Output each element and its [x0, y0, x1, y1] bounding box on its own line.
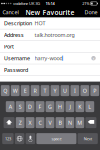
staticText: G: [48, 103, 52, 110]
staticText: V: [48, 119, 51, 126]
staticText: Q: [3, 87, 7, 94]
staticText: C: [39, 119, 42, 126]
staticText: Cancel: [2, 9, 18, 16]
staticText: O: [83, 87, 87, 94]
button[interactable]: L: [85, 101, 94, 112]
staticText: H: [58, 103, 62, 110]
staticText: Z: [19, 119, 22, 126]
staticText: New Favourite: [25, 8, 74, 17]
staticText: P: [93, 87, 96, 94]
staticText: Description: [4, 20, 32, 27]
button[interactable]: X: [26, 117, 34, 128]
button[interactable]: V: [46, 117, 54, 128]
staticText: Password: [4, 66, 28, 73]
button[interactable]: Z: [16, 117, 25, 128]
staticText: A: [9, 103, 12, 110]
staticText: 15:14: [45, 1, 54, 6]
staticText: talk.hotroom.org: [34, 31, 74, 38]
staticText: W: [13, 87, 18, 94]
button[interactable]: C: [36, 117, 44, 128]
staticText: K: [78, 103, 81, 110]
button[interactable]: Clear text: [90, 54, 97, 63]
button[interactable]: R: [31, 85, 39, 96]
button[interactable]: U: [60, 85, 69, 96]
button[interactable]: T: [41, 85, 49, 96]
staticText: Username: [4, 55, 30, 62]
button[interactable]: H: [56, 101, 64, 112]
staticText: B: [58, 119, 61, 126]
button[interactable]: Address: [0, 29, 100, 41]
staticText: F: [39, 103, 42, 110]
button[interactable]: I: [70, 85, 79, 96]
staticText: Next: [84, 136, 92, 141]
staticText: T: [43, 87, 46, 94]
button[interactable]: Password: [0, 64, 100, 76]
button[interactable]: G: [46, 101, 54, 112]
button[interactable]: D: [26, 101, 34, 112]
button[interactable]: Next: [78, 133, 98, 144]
staticText: 123: [5, 136, 11, 141]
staticText: 3G: [35, 1, 40, 6]
staticText: L: [88, 103, 91, 110]
staticText: I: [74, 87, 76, 94]
button[interactable]: E: [21, 85, 29, 96]
staticText: Port: [4, 43, 14, 50]
button[interactable]: K: [75, 101, 84, 112]
button[interactable]: A: [6, 101, 15, 112]
staticText: R: [34, 87, 37, 94]
button[interactable]: Q: [1, 85, 10, 96]
staticText: space: [51, 136, 61, 141]
staticText: Y: [53, 87, 56, 94]
button[interactable]: Next keyboard: [15, 133, 24, 144]
button[interactable]: O: [80, 85, 89, 96]
button[interactable]: 123: [2, 133, 14, 144]
staticText: M: [77, 119, 82, 126]
staticText: Done: [85, 9, 98, 16]
button[interactable]: Dictation: [26, 133, 35, 144]
button[interactable]: Shift: [4, 117, 15, 128]
button[interactable]: W: [11, 85, 20, 96]
staticText: x: [92, 55, 94, 61]
button[interactable]: F: [36, 101, 44, 112]
staticText: E: [24, 87, 27, 94]
button[interactable]: Y: [51, 85, 59, 96]
staticText: Address: [4, 31, 24, 38]
staticText: N: [68, 119, 72, 126]
staticText: 21%: [82, 1, 89, 6]
button[interactable]: B: [56, 117, 64, 128]
button[interactable]: P: [90, 85, 99, 96]
button[interactable]: Port: [0, 41, 100, 53]
staticText: HOT: [34, 20, 45, 27]
staticText: X: [29, 119, 32, 126]
button[interactable]: space: [36, 133, 76, 144]
staticText: harry-wood: [34, 55, 62, 62]
button[interactable]: M: [75, 117, 84, 128]
button[interactable]: Description: [0, 18, 100, 29]
button[interactable]: J: [65, 101, 74, 112]
staticText: D: [28, 103, 32, 110]
button[interactable]: Username: [0, 53, 100, 64]
staticText: J: [69, 103, 70, 110]
button[interactable]: S: [16, 101, 25, 112]
button[interactable]: Cancel: [0, 7, 21, 18]
staticText: vodafone UK: [13, 1, 34, 6]
button[interactable]: N: [65, 117, 74, 128]
staticText: U: [63, 87, 67, 94]
button[interactable]: Done: [82, 7, 100, 18]
button[interactable]: Delete: [85, 117, 96, 128]
staticText: S: [19, 103, 22, 110]
